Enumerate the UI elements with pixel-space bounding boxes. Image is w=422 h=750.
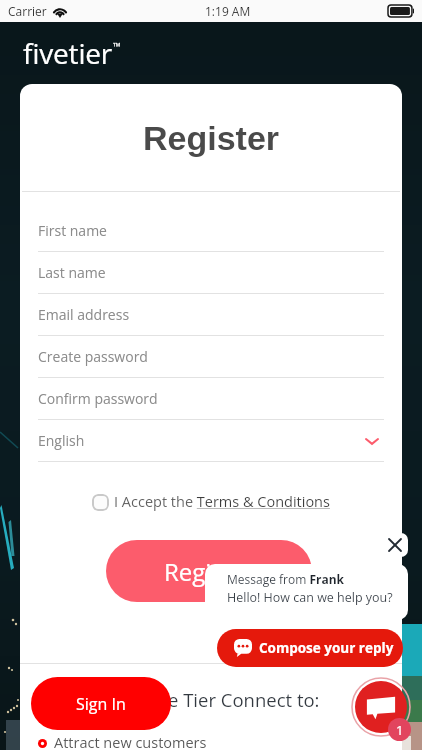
staticText: Use Five Tier Connect to:: [107, 687, 320, 712]
staticText: Compose your reply: [259, 639, 394, 657]
button[interactable]: Register: [106, 540, 312, 602]
staticText: Last name: [38, 263, 106, 282]
staticText: fivetier: [23, 34, 113, 72]
button[interactable]: English: [38, 420, 384, 461]
button[interactable]: Confirm password: [38, 378, 384, 419]
button[interactable]: Create password: [38, 336, 384, 377]
button[interactable]: First name: [38, 210, 384, 251]
staticText: Create password: [38, 347, 148, 366]
staticText: 1:19 AM: [205, 3, 251, 19]
button[interactable]: Compose your reply: [217, 629, 403, 667]
button[interactable]: Sign In: [31, 677, 171, 730]
staticText: Message from Frank: [227, 571, 345, 587]
staticText: Register: [143, 119, 280, 157]
staticText: Register: [164, 555, 255, 588]
staticText: 1: [396, 721, 404, 739]
staticText: English: [38, 431, 85, 450]
staticText: Email address: [38, 305, 130, 324]
button[interactable]: Open chat: [351, 677, 411, 737]
staticText: Sign In: [76, 693, 126, 715]
button[interactable]: Close: [381, 533, 408, 557]
button[interactable]: Message from Frank: [205, 564, 408, 620]
staticText: Carrier: [8, 3, 47, 19]
button[interactable]: Last name: [38, 252, 384, 293]
button[interactable]: I Accept the Terms & Conditions: [20, 489, 402, 515]
staticText: Hello! How can we help you?: [227, 589, 393, 606]
staticText: Confirm password: [38, 389, 158, 408]
staticText: ™: [113, 39, 121, 53]
staticText: Attract new customers: [54, 733, 207, 750]
staticText: First name: [38, 221, 107, 240]
button[interactable]: Email address: [38, 294, 384, 335]
staticText: I Accept the Terms & Conditions: [114, 492, 330, 512]
